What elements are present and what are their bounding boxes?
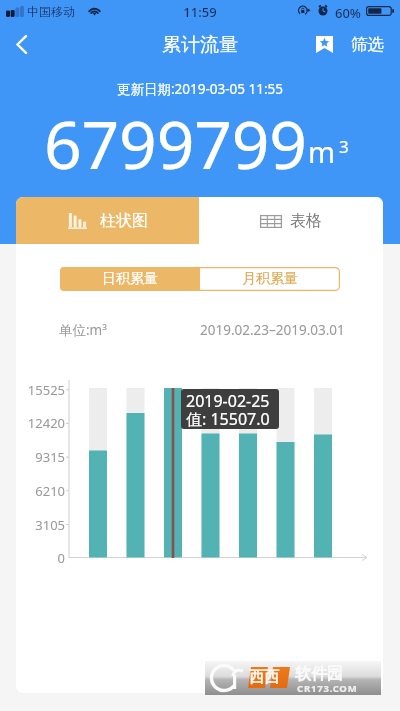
staticText: 单位:m³ — [59, 321, 107, 339]
button[interactable]: 柱状图 — [16, 197, 199, 244]
staticText: 累计流量 — [0, 33, 400, 57]
staticText: 6799799 — [44, 98, 307, 180]
staticText: 软件园 — [295, 664, 343, 684]
staticText: 月积累量 — [242, 270, 298, 288]
button[interactable]: 筛选 — [312, 30, 388, 59]
staticText: 日积累量 — [102, 270, 158, 288]
staticText: 西西 — [249, 668, 279, 687]
button[interactable]: 表格 — [199, 197, 383, 244]
staticText: 60% — [335, 4, 361, 22]
staticText: 3105 — [16, 516, 65, 534]
staticText: 0 — [16, 549, 65, 567]
staticText: 更新日期:2019-03-05 11:55 — [0, 80, 400, 98]
staticText: 12420 — [16, 414, 65, 432]
button[interactable]: Back — [3, 26, 39, 62]
button[interactable]: 日积累量 — [60, 267, 200, 291]
staticText: 3 — [339, 135, 349, 158]
staticText: 2019-02-25 — [186, 390, 270, 412]
staticText: CR173.COM — [297, 682, 358, 695]
staticText: 表格 — [290, 211, 322, 231]
staticText: 2019.02.23–2019.03.01 — [200, 321, 345, 339]
staticText: m — [308, 132, 336, 171]
staticText: 11:59 — [0, 3, 400, 21]
staticText: 筛选 — [351, 34, 384, 55]
staticText: 中国移动 — [27, 4, 75, 19]
staticText: 6210 — [16, 482, 65, 500]
staticText: 15525 — [16, 381, 65, 399]
staticText: 值: 15507.0 — [186, 408, 270, 429]
staticText: 9315 — [16, 448, 65, 466]
button[interactable]: 月积累量 — [200, 267, 340, 291]
staticText: 柱状图 — [100, 211, 148, 231]
